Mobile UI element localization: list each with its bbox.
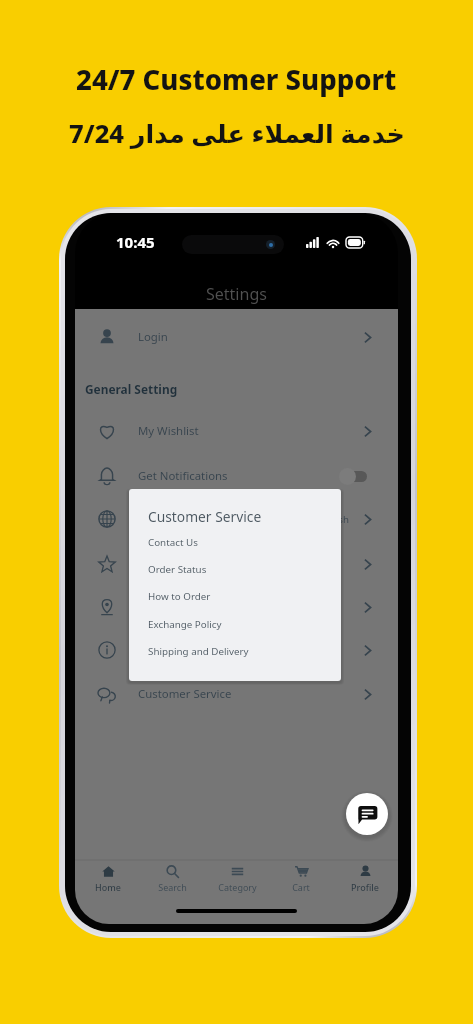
button[interactable]: Rate Us bbox=[75, 542, 398, 586]
staticText: 24/7 Customer Support bbox=[76, 61, 397, 98]
staticText: Search bbox=[158, 881, 187, 893]
button[interactable]: Category bbox=[206, 860, 268, 900]
button[interactable]: Search bbox=[141, 860, 203, 900]
staticText: Home bbox=[95, 881, 121, 893]
staticText: Exchange Policy bbox=[148, 618, 222, 631]
button[interactable]: Order Status bbox=[129, 556, 341, 583]
button[interactable]: Chat support bbox=[346, 793, 388, 835]
staticText: Get Notifications bbox=[138, 468, 228, 484]
staticText: Category bbox=[218, 881, 257, 893]
staticText: Settings bbox=[206, 283, 267, 305]
staticText: About Us bbox=[138, 642, 188, 658]
staticText: Profile bbox=[351, 881, 379, 893]
button[interactable]: Language bbox=[75, 497, 398, 541]
button[interactable]: Home bbox=[77, 860, 139, 900]
staticText: Rate Us bbox=[138, 556, 179, 572]
staticText: Cart bbox=[292, 881, 310, 893]
staticText: Customer Service bbox=[138, 686, 232, 702]
button[interactable]: Contact Us bbox=[129, 529, 341, 556]
staticText: Login bbox=[138, 329, 168, 345]
staticText: 10:45 bbox=[116, 232, 155, 252]
button[interactable]: Exchange Policy bbox=[129, 611, 341, 638]
button[interactable]: How to Order bbox=[129, 583, 341, 610]
staticText: Our Branches bbox=[138, 599, 212, 615]
button[interactable]: Our Branches bbox=[75, 585, 398, 629]
button[interactable]: Shipping and Delivery bbox=[129, 638, 341, 665]
staticText: خدمة العملاء على مدار 7/24 bbox=[69, 116, 405, 151]
button[interactable]: Settings bbox=[75, 279, 398, 309]
button[interactable]: Get Notifications bbox=[75, 454, 398, 498]
staticText: Customer Service bbox=[148, 507, 262, 526]
staticText: English bbox=[316, 513, 349, 526]
staticText: Order Status bbox=[148, 563, 207, 576]
staticText: My Wishlist bbox=[138, 423, 199, 439]
button[interactable]: Cart bbox=[270, 860, 332, 900]
button[interactable]: My Wishlist bbox=[75, 409, 398, 453]
staticText: How to Order bbox=[148, 590, 211, 603]
staticText: General Setting bbox=[85, 381, 178, 397]
button[interactable]: Profile bbox=[334, 860, 396, 900]
staticText: Contact Us bbox=[148, 536, 198, 549]
button[interactable]: About Us bbox=[75, 628, 398, 672]
button[interactable]: Customer Service bbox=[75, 672, 398, 716]
staticText: Shipping and Delivery bbox=[148, 645, 249, 658]
staticText: Language bbox=[138, 511, 192, 527]
button[interactable]: Login bbox=[75, 315, 398, 359]
